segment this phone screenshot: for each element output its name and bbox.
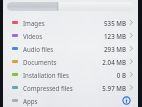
other: Open Compressed files xyxy=(129,84,133,91)
other: Open Videos xyxy=(129,32,133,39)
other: Open Images xyxy=(129,19,133,26)
other: Open Audio files xyxy=(129,45,133,52)
button[interactable]: Images xyxy=(3,16,138,29)
button[interactable]: Apps xyxy=(3,94,138,107)
staticText: 0 B xyxy=(116,71,126,79)
button[interactable]: Audio files xyxy=(3,42,138,55)
button[interactable]: Videos xyxy=(3,29,138,42)
staticText: 5.97 MB xyxy=(102,84,126,92)
staticText: 2.04 MB xyxy=(102,58,126,66)
button[interactable]: Apps storage information xyxy=(122,96,131,105)
staticText: Images xyxy=(23,19,45,27)
staticText: 535 MB xyxy=(104,19,126,27)
other: Open Installation files xyxy=(129,71,133,78)
staticText: 123 MB xyxy=(104,32,126,40)
button[interactable] xyxy=(7,2,134,11)
staticText: 293 MB xyxy=(104,45,126,53)
button[interactable]: Documents xyxy=(3,55,138,68)
staticText: Documents xyxy=(23,58,57,66)
staticText: Audio files xyxy=(23,45,54,53)
staticText: Apps xyxy=(23,97,38,105)
staticText: Videos xyxy=(23,32,43,40)
staticText: Installation files xyxy=(23,71,70,79)
other: Open Documents xyxy=(129,58,133,65)
staticText: Compressed files xyxy=(23,84,73,92)
button[interactable]: Compressed files xyxy=(3,81,138,94)
button[interactable]: Installation files xyxy=(3,68,138,81)
